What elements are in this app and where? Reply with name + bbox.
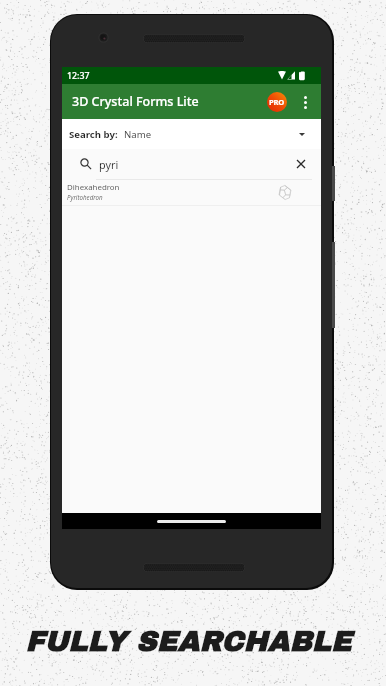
button[interactable]: Search [78, 156, 94, 172]
staticText: 3D Crystal Forms Lite [72, 93, 199, 110]
staticText: Search by: [69, 128, 118, 141]
button[interactable]: Upgrade to Pro [267, 92, 287, 112]
staticText: Name [124, 128, 152, 141]
staticText: 12:37 [67, 70, 90, 82]
button[interactable]: More options [297, 89, 313, 115]
staticText: PRO [269, 97, 285, 107]
staticText: Dihexahedron [67, 182, 120, 193]
staticText: pyri [99, 157, 119, 172]
button[interactable]: Dihexahedron [62, 180, 321, 205]
button[interactable]: Search by: [62, 119, 321, 149]
staticText: FULLY SEARCHABLE [25, 626, 352, 657]
button[interactable]: Clear search [293, 156, 309, 172]
staticText: Pyritohedron [67, 193, 103, 201]
